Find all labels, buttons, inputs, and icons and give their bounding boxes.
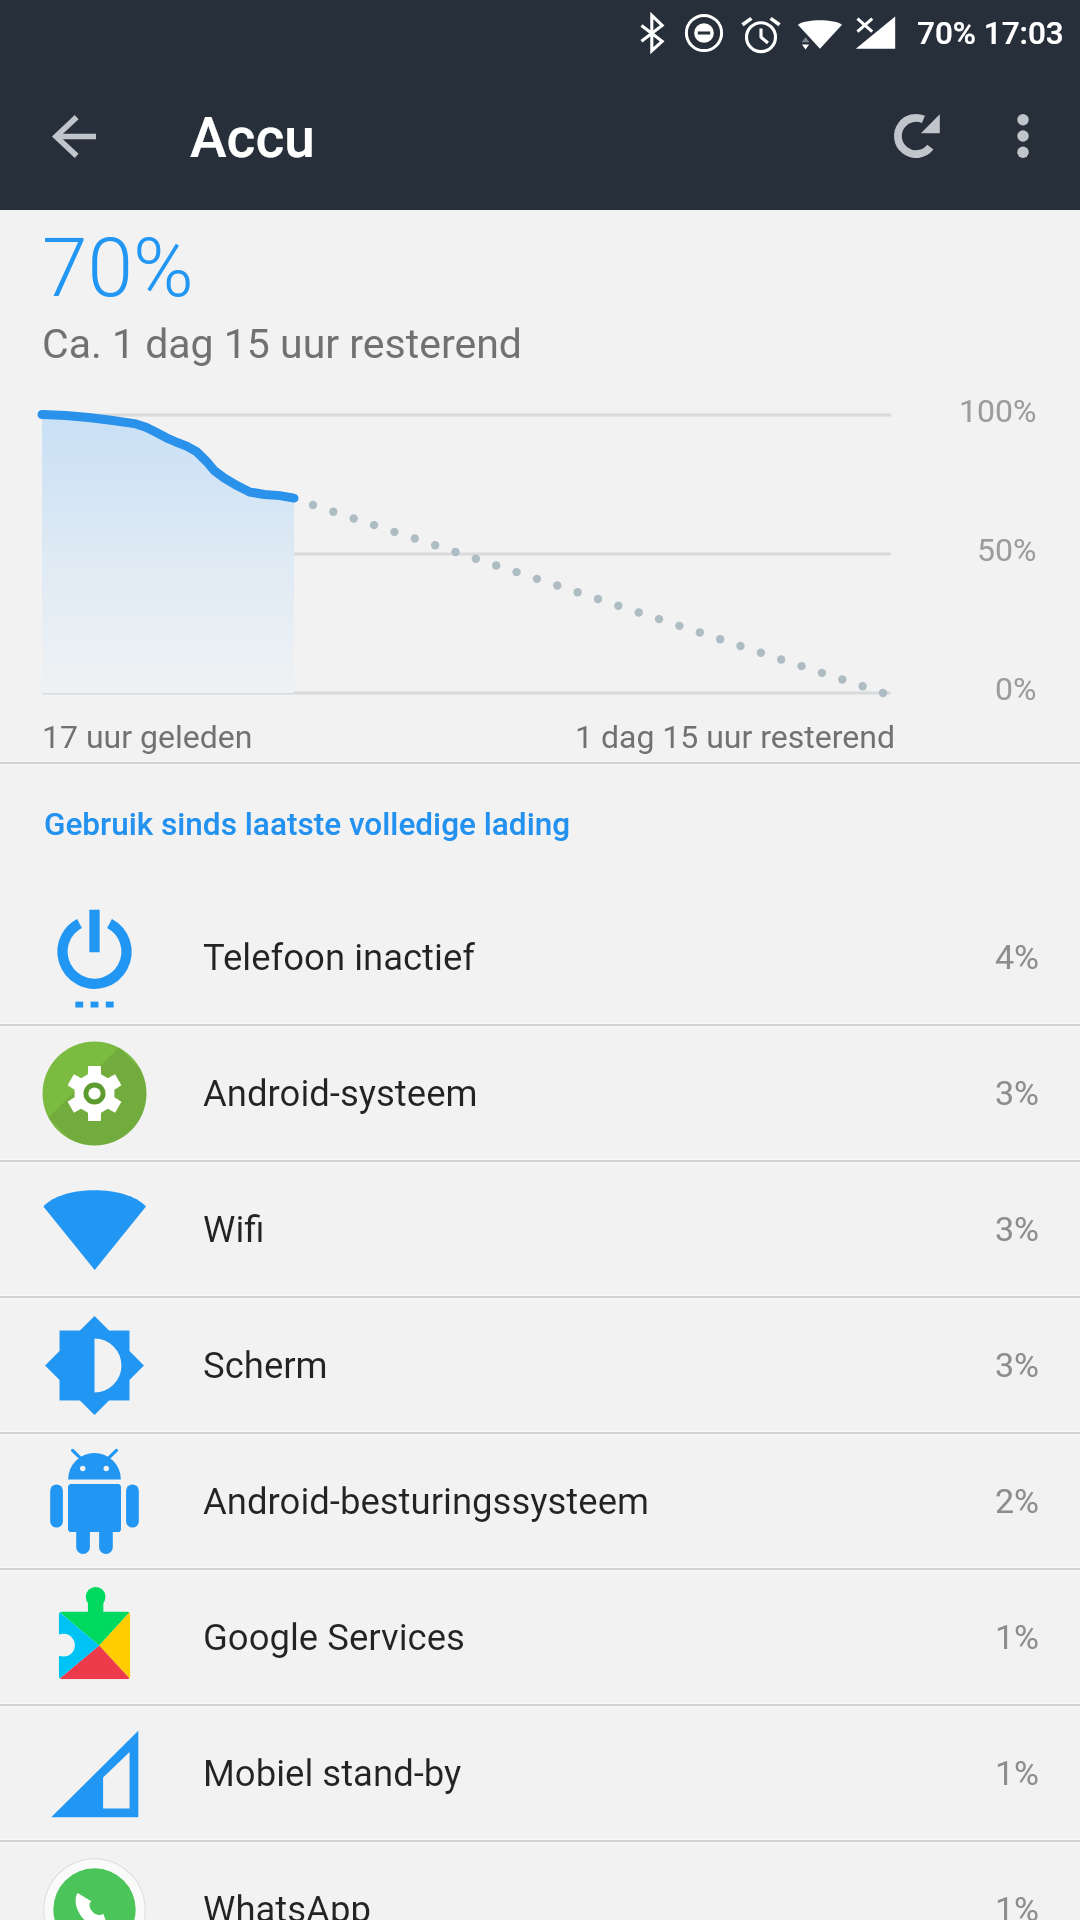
staticText: 3% bbox=[995, 1345, 1040, 1385]
button[interactable]: Gebruik sinds laatste volledige lading bbox=[0, 765, 1080, 891]
button[interactable]: Wifi bbox=[0, 1163, 1080, 1295]
staticText: 70% 17:03 bbox=[917, 15, 1064, 52]
button[interactable]: Meer opties bbox=[977, 64, 1069, 208]
button[interactable]: Android-besturingssysteem bbox=[0, 1435, 1080, 1567]
staticText: Android-besturingssysteem bbox=[203, 1480, 650, 1523]
staticText: Telefoon inactief bbox=[203, 936, 475, 979]
button[interactable]: Android-systeem bbox=[0, 1027, 1080, 1159]
button[interactable]: Scherm bbox=[0, 1299, 1080, 1431]
staticText: 100% bbox=[959, 392, 1037, 430]
staticText: Android-systeem bbox=[203, 1072, 478, 1115]
staticText: 70% bbox=[42, 220, 194, 316]
staticText: WhatsApp bbox=[203, 1888, 371, 1920]
button[interactable]: Vernieuwen bbox=[855, 64, 977, 208]
staticText: 3% bbox=[995, 1209, 1040, 1249]
staticText: Mobiel stand-by bbox=[203, 1752, 462, 1795]
staticText: 50% bbox=[977, 531, 1037, 569]
staticText: 1 dag 15 uur resterend bbox=[575, 718, 895, 756]
staticText: 17 uur geleden bbox=[42, 718, 253, 756]
staticText: 1% bbox=[995, 1753, 1040, 1793]
button[interactable]: Google Services bbox=[0, 1571, 1080, 1703]
button[interactable]: Mobiel stand-by bbox=[0, 1707, 1080, 1839]
staticText: Scherm bbox=[203, 1344, 328, 1387]
staticText: Google Services bbox=[203, 1616, 465, 1659]
staticText: 3% bbox=[995, 1073, 1040, 1113]
staticText: Gebruik sinds laatste volledige lading bbox=[44, 806, 571, 843]
staticText: Accu bbox=[190, 106, 315, 170]
staticText: 0% bbox=[995, 670, 1037, 708]
staticText: 1% bbox=[995, 1889, 1040, 1920]
staticText: 2% bbox=[995, 1481, 1040, 1521]
staticText: 1% bbox=[995, 1617, 1040, 1657]
button[interactable]: Telefoon inactief bbox=[0, 891, 1080, 1023]
button[interactable]: Terug bbox=[22, 84, 126, 188]
staticText: Ca. 1 dag 15 uur resterend bbox=[42, 320, 522, 368]
staticText: Wifi bbox=[203, 1208, 265, 1251]
button[interactable]: WhatsApp bbox=[0, 1843, 1080, 1920]
staticText: 4% bbox=[995, 937, 1040, 977]
